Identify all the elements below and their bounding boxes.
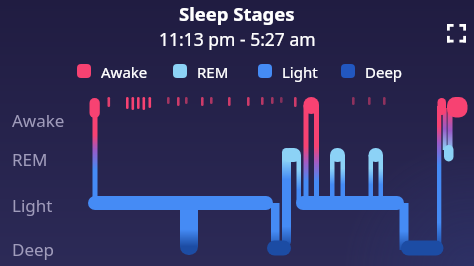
staticText: Deep [12,238,55,261]
staticText: Light [12,194,53,217]
staticText: REM [197,62,229,82]
staticText: REM [12,148,48,171]
button[interactable]: REM [173,64,205,84]
staticText: Awake [12,109,65,132]
button[interactable]: Deep [341,64,379,84]
staticText: Sleep Stages [179,1,295,26]
button[interactable]: Awake [77,64,124,84]
button[interactable]: Light [258,64,294,84]
staticText: 11:13 pm - 5:27 am [159,27,316,51]
staticText: Light [282,62,318,82]
staticText: Deep [365,62,403,82]
button[interactable] [443,20,469,46]
staticText: Awake [101,62,148,82]
